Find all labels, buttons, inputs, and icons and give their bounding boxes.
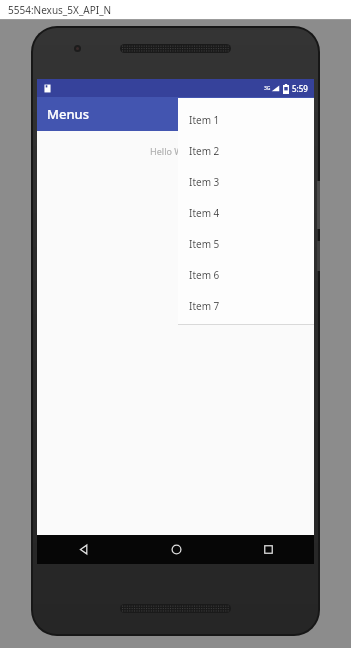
button[interactable]: Recents bbox=[222, 535, 314, 564]
staticText: Item 1 bbox=[189, 113, 220, 127]
staticText: Item 5 bbox=[189, 237, 220, 251]
button[interactable]: Item 7 bbox=[178, 290, 314, 321]
button[interactable]: Item 1 bbox=[178, 104, 314, 135]
staticText: Item 7 bbox=[189, 299, 220, 313]
staticText: Item 3 bbox=[189, 175, 220, 189]
staticText: Item 2 bbox=[189, 144, 220, 158]
button[interactable]: Item 4 bbox=[178, 197, 314, 228]
button[interactable]: Item 5 bbox=[178, 228, 314, 259]
staticText: 5554:Nexus_5X_API_N bbox=[8, 3, 112, 17]
button[interactable]: Item 3 bbox=[178, 166, 314, 197]
button[interactable]: Home bbox=[130, 535, 222, 564]
staticText: Menus bbox=[47, 105, 90, 123]
button[interactable]: Back bbox=[37, 535, 130, 564]
staticText: Item 6 bbox=[189, 268, 220, 282]
staticText: 5:59 bbox=[292, 83, 308, 94]
staticText: 3G bbox=[264, 85, 271, 92]
button[interactable]: Item 6 bbox=[178, 259, 314, 290]
staticText: Item 4 bbox=[189, 206, 220, 220]
button[interactable]: Item 2 bbox=[178, 135, 314, 166]
staticText: Hello World! bbox=[150, 145, 202, 157]
